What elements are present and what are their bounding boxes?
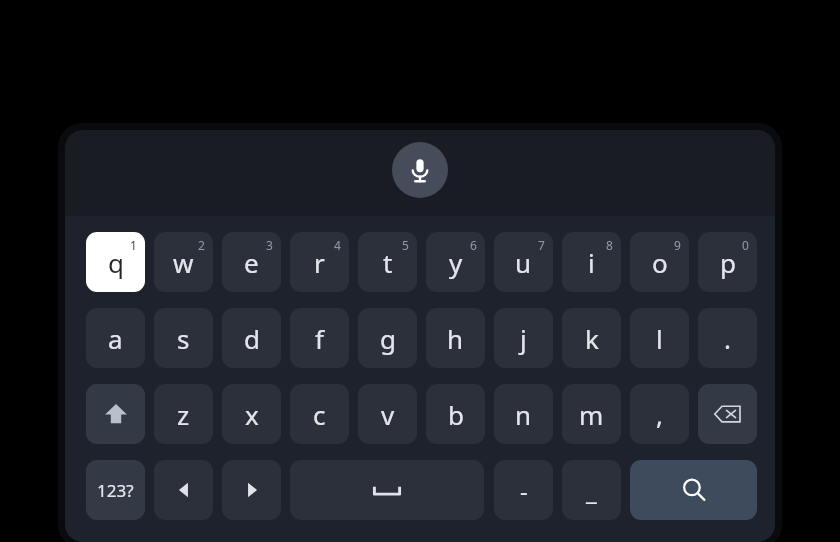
staticText: a	[108, 321, 123, 356]
button[interactable]: f	[290, 308, 349, 368]
staticText: 0	[742, 237, 749, 253]
staticText: ,	[656, 397, 663, 432]
button[interactable]: k	[562, 308, 621, 368]
staticText: o	[652, 245, 668, 280]
staticText: s	[177, 321, 190, 356]
staticText: d	[244, 321, 260, 356]
button[interactable]: o	[630, 232, 689, 292]
staticText: 2	[198, 237, 205, 253]
staticText: r	[314, 245, 325, 280]
staticText: 8	[606, 237, 613, 253]
button[interactable]: Move cursor right	[222, 460, 281, 520]
button[interactable]: -	[494, 460, 553, 520]
button[interactable]: Move cursor left	[154, 460, 213, 520]
staticText: j	[520, 321, 527, 356]
button[interactable]: 123?	[86, 460, 145, 520]
button[interactable]: v	[358, 384, 417, 444]
staticText: i	[588, 245, 595, 280]
button[interactable]: b	[426, 384, 485, 444]
button[interactable]: a	[86, 308, 145, 368]
button[interactable]: Voice input	[392, 142, 448, 198]
button[interactable]: e	[222, 232, 281, 292]
staticText: 3	[266, 237, 273, 253]
button[interactable]: Shift	[86, 384, 145, 444]
staticText: u	[515, 245, 532, 280]
staticText: t	[383, 245, 393, 280]
staticText: 123?	[97, 479, 134, 502]
staticText: q	[108, 245, 124, 280]
staticText: _	[586, 474, 597, 507]
staticText: x	[245, 397, 259, 432]
button[interactable]: d	[222, 308, 281, 368]
staticText: 1	[130, 237, 137, 253]
staticText: g	[380, 321, 396, 356]
button[interactable]: m	[562, 384, 621, 444]
button[interactable]: y	[426, 232, 485, 292]
staticText: n	[515, 397, 532, 432]
staticText: k	[585, 321, 599, 356]
button[interactable]: q	[86, 232, 145, 292]
button[interactable]: ,	[630, 384, 689, 444]
staticText: f	[315, 321, 324, 356]
staticText: e	[244, 245, 259, 280]
staticText: l	[656, 321, 663, 356]
staticText: y	[449, 245, 463, 280]
button[interactable]: j	[494, 308, 553, 368]
button[interactable]: x	[222, 384, 281, 444]
button[interactable]: h	[426, 308, 485, 368]
button[interactable]: _	[562, 460, 621, 520]
button[interactable]: i	[562, 232, 621, 292]
staticText: p	[720, 245, 736, 280]
staticText: v	[381, 397, 395, 432]
staticText: 6	[470, 237, 477, 253]
staticText: -	[520, 474, 528, 507]
button[interactable]: n	[494, 384, 553, 444]
button[interactable]: w	[154, 232, 213, 292]
button[interactable]: p	[698, 232, 757, 292]
staticText: 9	[674, 237, 681, 253]
button[interactable]: g	[358, 308, 417, 368]
button[interactable]: t	[358, 232, 417, 292]
staticText: 5	[402, 237, 409, 253]
staticText: h	[447, 321, 464, 356]
staticText: m	[579, 397, 604, 432]
staticText: c	[313, 397, 326, 432]
staticText: z	[177, 397, 190, 432]
staticText: 7	[538, 237, 545, 253]
button[interactable]: r	[290, 232, 349, 292]
staticText: .	[724, 321, 731, 356]
button[interactable]: .	[698, 308, 757, 368]
button[interactable]: z	[154, 384, 213, 444]
button[interactable]: Space	[290, 460, 484, 520]
staticText: 4	[334, 237, 341, 253]
button[interactable]: s	[154, 308, 213, 368]
button[interactable]: Backspace	[698, 384, 757, 444]
staticText: w	[173, 245, 194, 280]
button[interactable]: c	[290, 384, 349, 444]
button[interactable]: Search	[630, 460, 757, 520]
button[interactable]: u	[494, 232, 553, 292]
button[interactable]: l	[630, 308, 689, 368]
staticText: b	[448, 397, 464, 432]
